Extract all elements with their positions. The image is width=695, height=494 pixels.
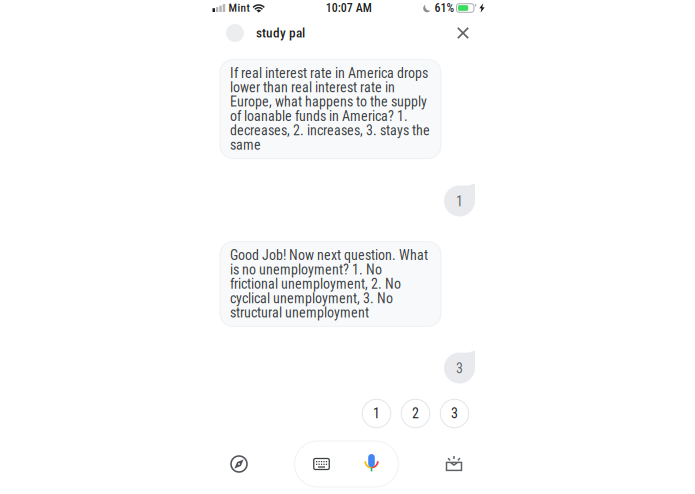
- staticText: If real interest rate in America drops l…: [230, 66, 430, 152]
- button[interactable]: Explore: [219, 442, 259, 486]
- staticText: 1: [373, 405, 380, 422]
- staticText: 10:07 AM: [326, 1, 372, 15]
- staticText: Good Job! Now next question. What is no …: [230, 248, 428, 320]
- button[interactable]: 2: [401, 399, 430, 428]
- staticText: 61%: [434, 1, 454, 15]
- button[interactable]: 1: [362, 399, 391, 428]
- staticText: 1: [456, 193, 463, 210]
- staticText: Mint: [228, 1, 249, 15]
- button[interactable]: Voice input: [294, 441, 398, 487]
- staticText: study pal: [256, 25, 305, 41]
- staticText: 2: [412, 405, 419, 422]
- button[interactable]: Close: [450, 20, 476, 46]
- button[interactable]: Updates: [434, 442, 474, 486]
- staticText: 3: [456, 360, 463, 377]
- button[interactable]: 3: [440, 399, 469, 428]
- staticText: 3: [451, 405, 458, 422]
